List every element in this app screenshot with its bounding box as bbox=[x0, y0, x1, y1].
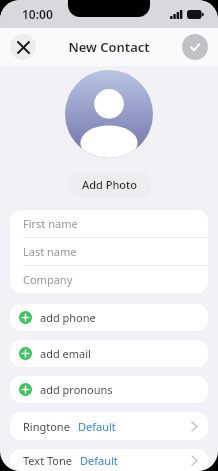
button[interactable]: Ringtone bbox=[10, 412, 208, 440]
staticText: Company bbox=[23, 272, 73, 287]
button[interactable]: Add Photo bbox=[67, 171, 152, 198]
staticText: Last name bbox=[23, 244, 77, 259]
button[interactable]: Done bbox=[182, 34, 208, 60]
staticText: Text Tone bbox=[23, 453, 72, 468]
button[interactable]: add phone bbox=[10, 304, 208, 331]
staticText: First name bbox=[23, 216, 78, 231]
staticText: add phone bbox=[40, 310, 96, 325]
staticText: Ringtone bbox=[23, 419, 70, 434]
staticText: add email bbox=[40, 346, 91, 361]
button[interactable]: Company bbox=[10, 266, 208, 293]
staticText: add pronouns bbox=[40, 382, 113, 397]
button[interactable]: Contact photo bbox=[65, 70, 153, 158]
staticText: Default bbox=[80, 453, 118, 468]
button[interactable]: Close bbox=[10, 34, 36, 60]
staticText: New Contact bbox=[68, 38, 150, 56]
staticText: 10:00 bbox=[22, 6, 53, 22]
button[interactable]: add pronouns bbox=[10, 376, 208, 403]
staticText: Add Photo bbox=[82, 177, 137, 192]
button[interactable]: add email bbox=[10, 340, 208, 367]
button[interactable]: Last name bbox=[10, 238, 208, 266]
button[interactable]: Text Tone bbox=[10, 449, 208, 471]
staticText: Default bbox=[78, 419, 116, 434]
button[interactable]: First name bbox=[10, 210, 208, 238]
